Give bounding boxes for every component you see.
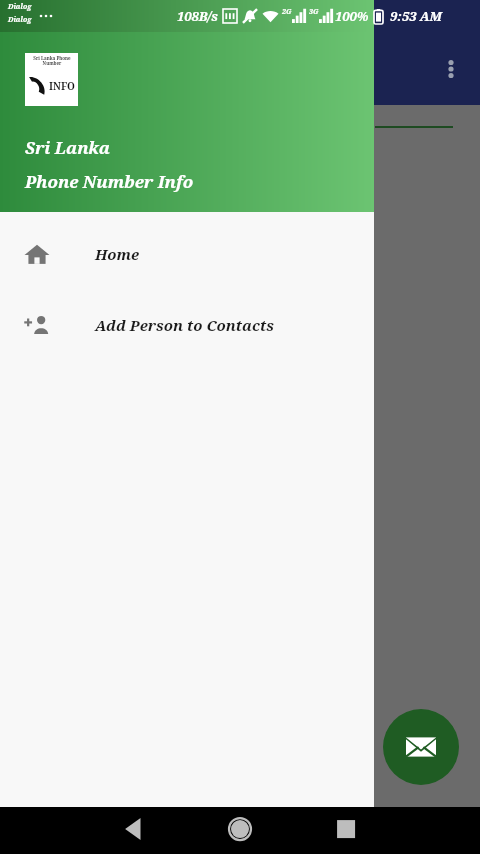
staticText: 2G: [282, 7, 292, 17]
staticText: 9:53 AM: [390, 7, 443, 25]
staticText: Home: [95, 244, 140, 264]
staticText: Add Person to Contacts: [95, 315, 274, 335]
staticText: Dialog: [8, 2, 32, 12]
staticText: 100%: [335, 7, 369, 25]
staticText: 108B/s: [177, 7, 218, 25]
staticText: Phone Number Info: [25, 170, 194, 193]
staticText: INFO: [49, 79, 75, 93]
button[interactable]: Add Person to Contacts: [0, 303, 374, 347]
staticText: Dialog: [8, 15, 32, 25]
button[interactable]: Send message: [383, 709, 459, 785]
button[interactable]: Home: [0, 232, 374, 276]
staticText: Sri Lanka: [25, 136, 111, 159]
button[interactable]: More options: [429, 47, 473, 91]
staticText: 3G: [309, 7, 319, 17]
staticText: Sri Lanka Phone Number: [33, 55, 71, 67]
